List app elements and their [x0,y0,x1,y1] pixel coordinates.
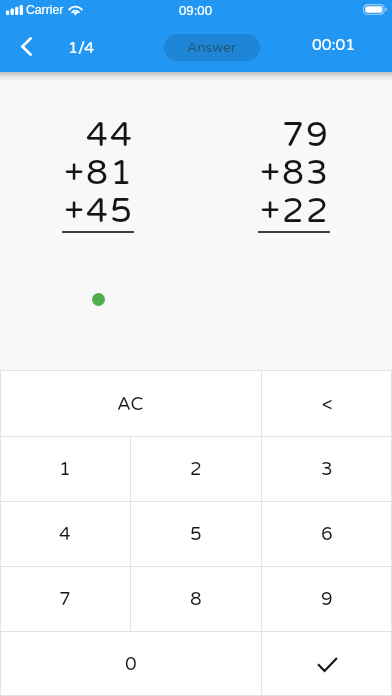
staticText: Answer [187,39,237,56]
staticText: 2 [190,458,202,480]
button[interactable]: 3 [262,437,392,501]
staticText: 1 [59,458,71,480]
staticText: < [322,393,333,415]
button[interactable]: 8 [131,567,261,631]
staticText: 0 [125,653,137,675]
staticText: 79 [258,114,330,156]
staticText: 6 [321,523,333,545]
staticText: +22 [258,190,330,232]
button[interactable]: 4 [0,502,130,566]
button[interactable]: 7 [0,567,130,631]
staticText: +81 [62,152,134,194]
staticText: Carrier [26,3,64,17]
button[interactable]: Submit answer [262,632,392,696]
button[interactable]: 5 [131,502,261,566]
button[interactable]: 1 [0,437,130,501]
staticText: 5 [190,523,202,545]
staticText: 09:00 [179,3,213,18]
button[interactable]: AC [0,371,261,436]
staticText: 4 [59,523,71,545]
staticText: 7 [59,588,71,610]
staticText: 9 [321,588,333,610]
button[interactable]: 2 [131,437,261,501]
staticText: +83 [258,152,330,194]
staticText: 00:01 [312,36,355,55]
staticText: 8 [190,588,202,610]
button[interactable]: 0 [0,632,261,696]
button[interactable]: 6 [262,502,392,566]
staticText: AC [117,393,144,415]
staticText: 1/4 [68,38,95,57]
staticText: 3 [321,458,333,480]
staticText: +45 [62,190,134,232]
button[interactable]: Answer [164,34,260,61]
button[interactable]: Back [4,24,49,69]
button[interactable]: 9 [262,567,392,631]
staticText: 44 [62,114,134,156]
button[interactable]: < [262,371,392,436]
